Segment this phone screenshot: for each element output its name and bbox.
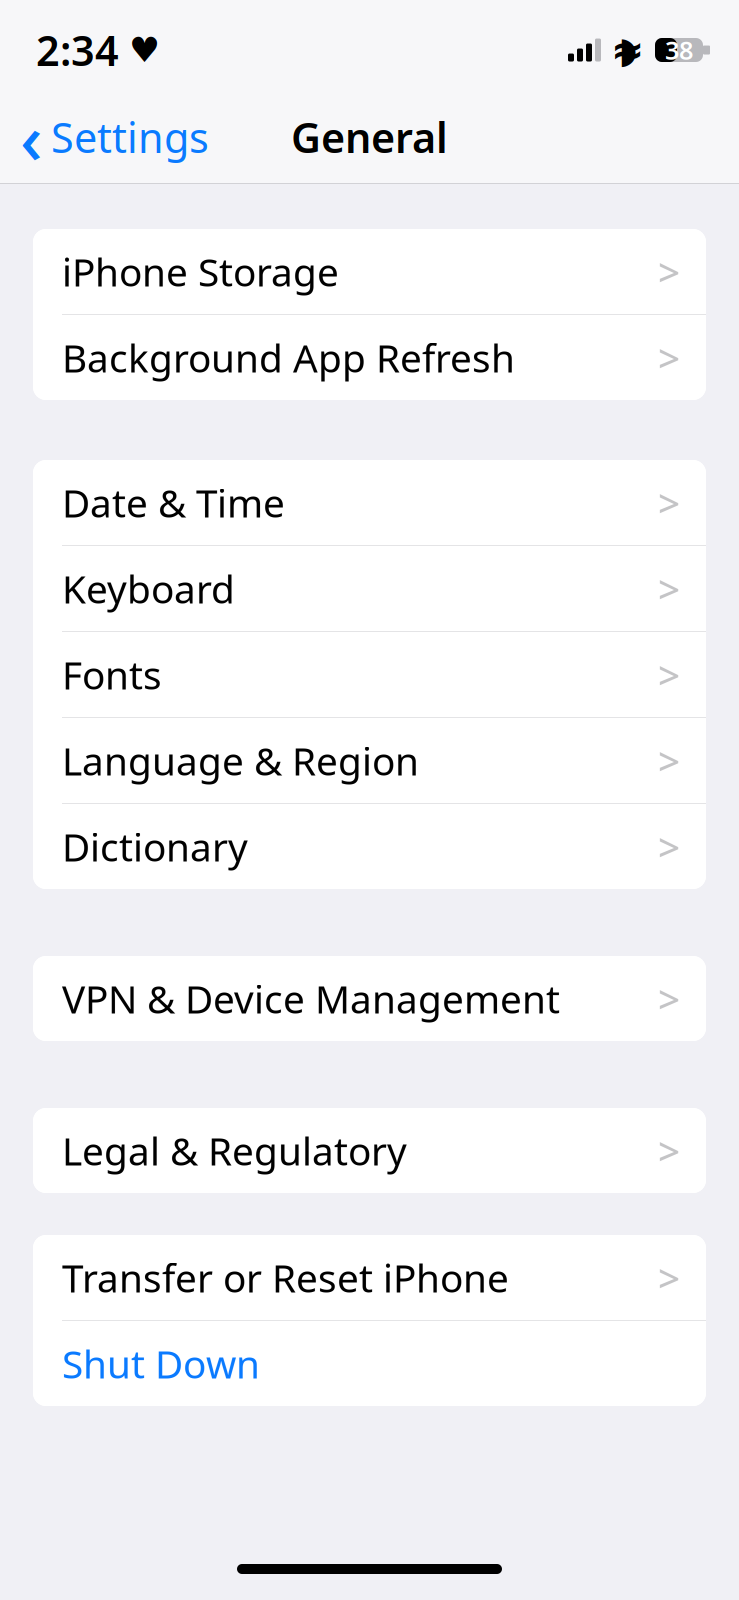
staticText: Language & Region	[62, 735, 419, 786]
staticText: Date & Time	[62, 477, 285, 528]
staticText: >	[658, 246, 680, 297]
button[interactable]: ‹	[0, 100, 223, 174]
staticText: >	[658, 332, 680, 383]
staticText: >	[658, 1252, 680, 1303]
staticText: Keyboard	[62, 563, 235, 614]
staticText: >	[658, 735, 680, 786]
button[interactable]: Keyboard	[33, 546, 706, 631]
button[interactable]: Background App Refresh	[33, 315, 706, 400]
staticText: VPN & Device Management	[62, 973, 560, 1024]
staticText: >	[658, 649, 680, 700]
button[interactable]: Dictionary	[33, 804, 706, 889]
button[interactable]: iPhone Storage	[33, 229, 706, 314]
staticText: ♥	[129, 30, 160, 70]
staticText: ≈	[611, 27, 645, 73]
staticText: Dictionary	[62, 821, 248, 872]
staticText: iPhone Storage	[62, 246, 339, 297]
staticText: 2:34	[36, 23, 119, 77]
button[interactable]: VPN & Device Management	[33, 956, 706, 1041]
button[interactable]: Fonts	[33, 632, 706, 717]
staticText: >	[658, 821, 680, 872]
staticText: >	[658, 1125, 680, 1176]
button[interactable]: Legal & Regulatory	[33, 1108, 706, 1193]
staticText: >	[658, 563, 680, 614]
staticText: ‹	[20, 91, 43, 183]
button[interactable]: Date & Time	[33, 460, 706, 545]
button[interactable]: Shut Down	[33, 1321, 706, 1406]
button[interactable]: Language & Region	[33, 718, 706, 803]
staticText: General	[291, 110, 448, 164]
staticText: Fonts	[62, 649, 162, 700]
staticText: ◗	[618, 30, 637, 70]
staticText: Background App Refresh	[62, 332, 515, 383]
staticText: Legal & Regulatory	[62, 1125, 407, 1176]
button[interactable]: Transfer or Reset iPhone	[33, 1235, 706, 1320]
staticText: 38	[665, 33, 693, 67]
staticText: Settings	[51, 110, 209, 164]
staticText: >	[658, 477, 680, 528]
staticText: >	[658, 973, 680, 1024]
staticText: Transfer or Reset iPhone	[62, 1252, 509, 1303]
staticText: Shut Down	[62, 1338, 260, 1389]
